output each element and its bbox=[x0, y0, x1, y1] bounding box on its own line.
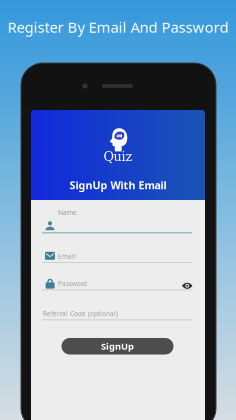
staticText: Email bbox=[58, 252, 76, 261]
staticText: Name bbox=[58, 208, 77, 217]
staticText: Referral Code (optional) bbox=[43, 309, 118, 318]
staticText: Quiz bbox=[103, 149, 132, 164]
staticText: Password bbox=[58, 279, 87, 288]
staticText: SignUp With Email bbox=[69, 178, 166, 192]
staticText: SignUp bbox=[101, 340, 134, 352]
button[interactable]: SignUp bbox=[61, 338, 173, 354]
staticText: Register By Email And Password bbox=[7, 17, 228, 37]
